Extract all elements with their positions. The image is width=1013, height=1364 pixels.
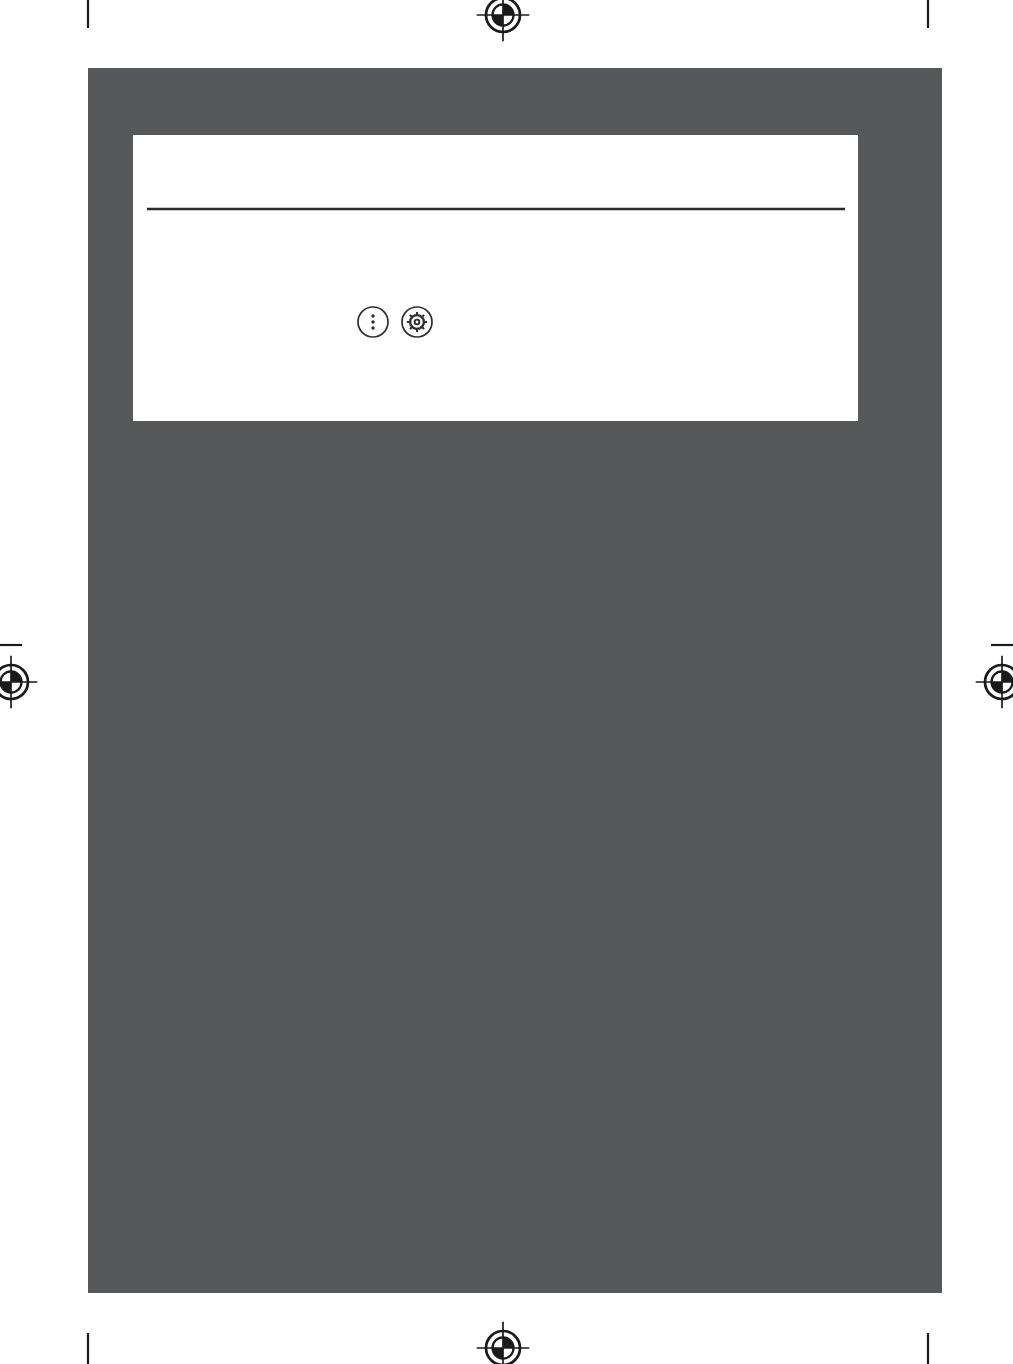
button[interactable]: More options xyxy=(356,305,390,339)
button[interactable]: More options xyxy=(133,135,858,421)
button[interactable]: Settings xyxy=(400,305,434,339)
